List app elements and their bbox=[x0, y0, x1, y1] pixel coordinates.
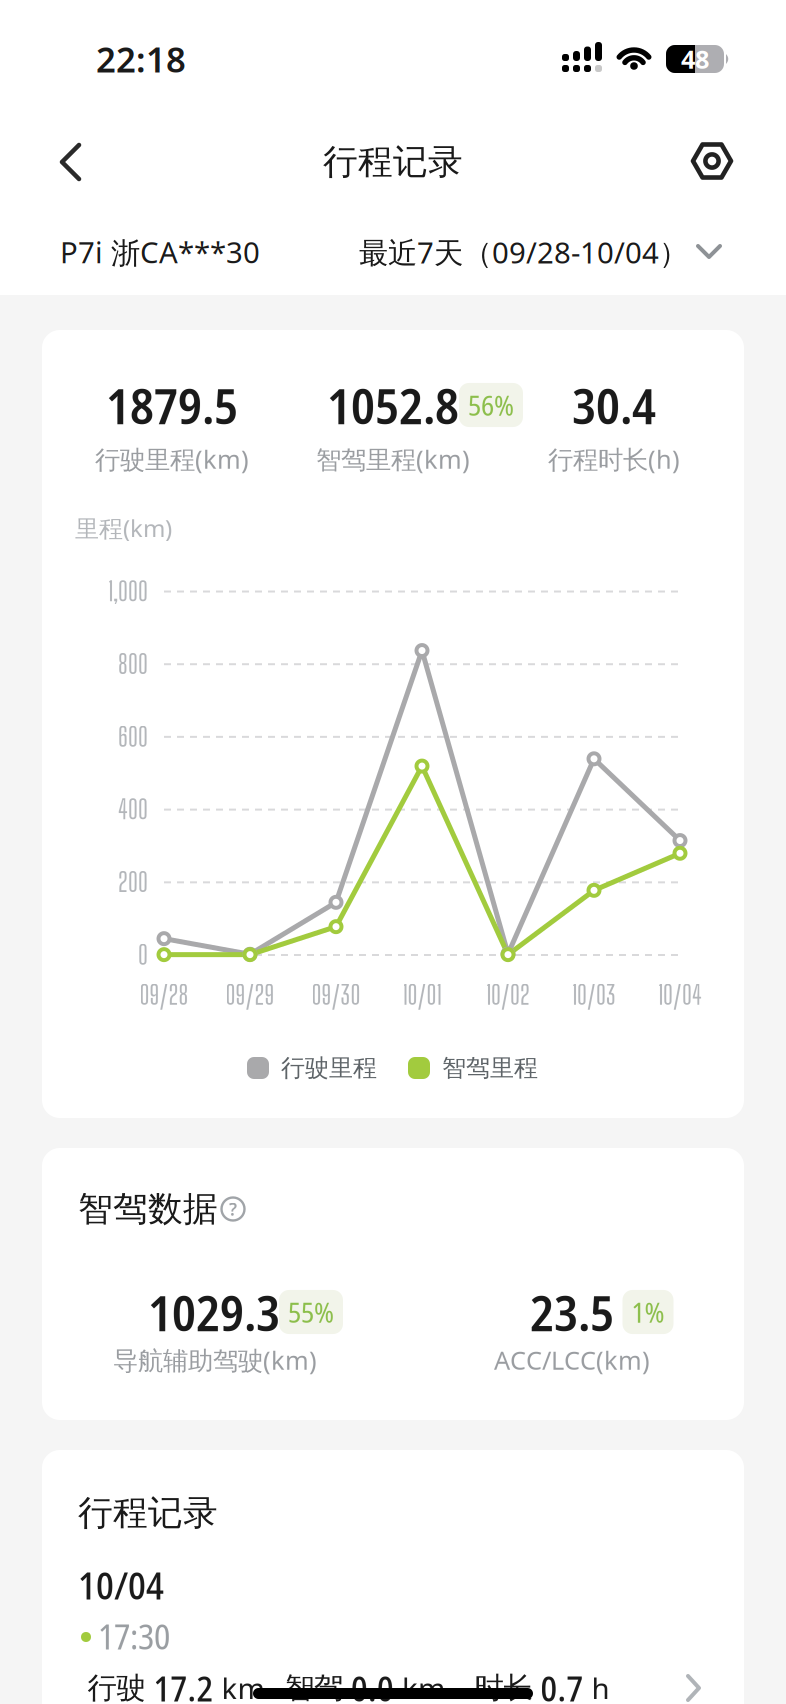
staticText: 最近7天（09/28-10/04） bbox=[359, 232, 688, 271]
staticText: 时长 bbox=[474, 1670, 532, 1704]
staticText: 55% bbox=[288, 1293, 334, 1331]
staticText: 10/03 bbox=[572, 980, 616, 1010]
staticText: 10/04 bbox=[78, 1560, 164, 1610]
staticText: 智驾 bbox=[285, 1670, 343, 1704]
staticText: 1029.3 bbox=[148, 1278, 280, 1346]
staticText: 行驶里程(km) bbox=[95, 442, 249, 476]
button[interactable]: Settings bbox=[691, 141, 735, 181]
staticText: 智驾数据 bbox=[78, 1188, 218, 1230]
staticText: 09/28 bbox=[139, 980, 188, 1010]
staticText: h bbox=[591, 1668, 609, 1704]
button[interactable]: 行驶 bbox=[78, 1660, 708, 1704]
staticText: km bbox=[221, 1668, 264, 1704]
staticText: 23.5 bbox=[530, 1278, 614, 1346]
staticText: 0.7 bbox=[540, 1664, 583, 1704]
staticText: 0 bbox=[138, 940, 148, 970]
staticText: 智驾里程 bbox=[442, 1053, 538, 1083]
staticText: 09/30 bbox=[311, 980, 360, 1010]
staticText: 09/29 bbox=[225, 980, 274, 1010]
staticText: 17:30 bbox=[98, 1612, 170, 1660]
staticText: 800 bbox=[118, 649, 148, 679]
staticText: 30.4 bbox=[572, 371, 656, 439]
staticText: 600 bbox=[118, 722, 148, 752]
staticText: 48 bbox=[681, 42, 709, 76]
button[interactable]: About smart driving data bbox=[220, 1196, 246, 1222]
staticText: 行程记录 bbox=[78, 1492, 218, 1534]
staticText: 1052.8 bbox=[327, 371, 459, 439]
staticText: 里程(km) bbox=[75, 512, 172, 544]
staticText: 导航辅助驾驶(km) bbox=[113, 1343, 317, 1377]
staticText: 1879.5 bbox=[106, 371, 238, 439]
staticText: 22:18 bbox=[96, 36, 186, 82]
staticText: 10/01 bbox=[402, 980, 441, 1010]
button[interactable]: P7i 浙CA***30 bbox=[60, 232, 380, 271]
staticText: 智驾里程(km) bbox=[316, 442, 470, 476]
staticText: ? bbox=[229, 1197, 237, 1220]
staticText: 17.2 bbox=[153, 1664, 213, 1704]
staticText: 56% bbox=[468, 386, 514, 424]
staticText: 400 bbox=[118, 794, 148, 825]
staticText: 行驶 bbox=[87, 1670, 145, 1704]
staticText: 1,000 bbox=[108, 576, 148, 607]
staticText: 行程记录 bbox=[323, 141, 463, 183]
staticText: 1% bbox=[631, 1293, 664, 1331]
button[interactable]: Back bbox=[59, 143, 83, 181]
staticText: 200 bbox=[118, 867, 148, 897]
staticText: ACC/LCC(km) bbox=[494, 1343, 650, 1377]
staticText: 行驶里程 bbox=[281, 1053, 377, 1083]
staticText: P7i 浙CA***30 bbox=[60, 232, 260, 271]
staticText: 10/02 bbox=[486, 980, 530, 1010]
staticText: km bbox=[402, 1668, 445, 1704]
staticText: 10/04 bbox=[658, 980, 702, 1010]
staticText: 行程时长(h) bbox=[548, 442, 680, 476]
button[interactable]: 最近7天（09/28-10/04） bbox=[242, 232, 722, 271]
staticText: 0.0 bbox=[351, 1664, 394, 1704]
